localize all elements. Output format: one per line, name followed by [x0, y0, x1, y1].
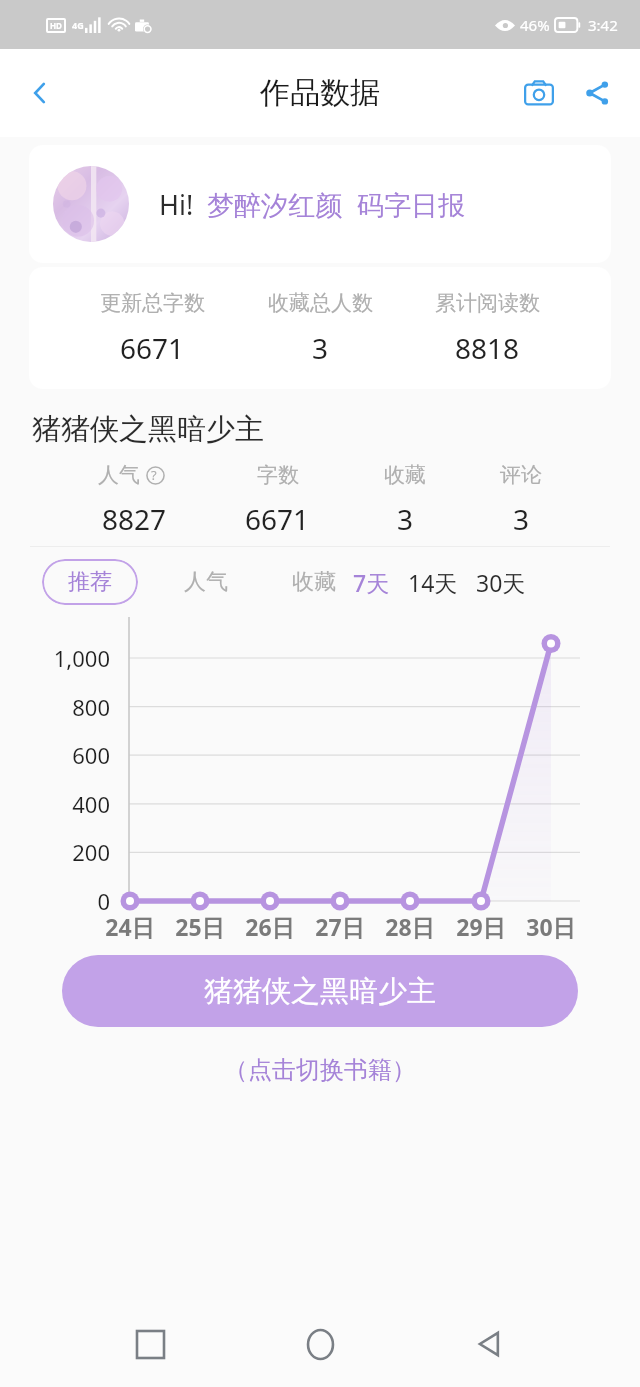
staticText: 收藏 — [292, 568, 336, 596]
staticText: 3 — [312, 329, 329, 367]
staticText: 0 — [0, 886, 110, 916]
staticText: 3:42 — [588, 15, 618, 35]
button[interactable]: 收藏 — [288, 564, 340, 600]
staticText: 30日 — [511, 911, 591, 942]
button[interactable]: 收藏总人数 — [268, 290, 373, 367]
button[interactable]: Back — [450, 1304, 530, 1384]
button[interactable]: 推荐 — [42, 559, 138, 605]
staticText: 25日 — [160, 911, 240, 942]
staticText: 3 — [513, 500, 530, 538]
staticText: 6671 — [245, 500, 310, 538]
staticText: 3 — [397, 500, 414, 538]
staticText: 46% — [520, 15, 550, 35]
staticText: 800 — [0, 692, 110, 722]
staticText: 推荐 — [68, 568, 112, 596]
staticText: 猪猪侠之黑暗少主 — [204, 973, 436, 1010]
staticText: 28日 — [370, 911, 450, 942]
button[interactable]: 人气 — [98, 462, 171, 538]
staticText: ? — [151, 466, 157, 484]
button[interactable]: Camera — [514, 68, 564, 118]
button[interactable]: 14天 — [405, 567, 461, 598]
staticText: 30天 — [476, 567, 526, 598]
staticText: 字数 — [257, 462, 299, 488]
staticText: 收藏总人数 — [268, 290, 373, 316]
staticText: 猪猪侠之黑暗少主 — [32, 411, 264, 448]
staticText: 1,000 — [0, 643, 110, 673]
button[interactable]: Recent apps — [110, 1304, 190, 1384]
button[interactable]: 7天 — [350, 567, 393, 598]
staticText: 作品数据 — [260, 74, 380, 112]
staticText: 24日 — [90, 911, 170, 942]
staticText: 26日 — [230, 911, 310, 942]
staticText: HD — [50, 20, 62, 31]
button[interactable]: 猪猪侠之黑暗少主 — [62, 955, 578, 1027]
staticText: 累计阅读数 — [435, 290, 540, 316]
staticText: 8818 — [455, 329, 520, 367]
button[interactable]: 30天 — [473, 567, 529, 598]
staticText: 27日 — [300, 911, 380, 942]
staticText: 8827 — [102, 500, 167, 538]
button[interactable]: 字数 — [245, 462, 310, 538]
staticText: 更新总字数 — [100, 290, 205, 316]
staticText: 600 — [0, 740, 110, 770]
staticText: 人气 — [98, 462, 140, 488]
staticText: 4G — [72, 19, 84, 31]
button[interactable]: Back — [14, 67, 66, 119]
staticText: 7天 — [353, 567, 390, 598]
button[interactable]: 累计阅读数 — [435, 290, 540, 367]
staticText: 29日 — [441, 911, 521, 942]
staticText: 梦醉汐红颜 — [207, 189, 342, 223]
staticText: 400 — [0, 789, 110, 819]
button[interactable]: （点击切换书籍） — [218, 1049, 422, 1091]
staticText: Hi! — [159, 186, 194, 223]
staticText: 码字日报 — [357, 189, 465, 223]
staticText: 200 — [0, 837, 110, 867]
button[interactable]: 更新总字数 — [100, 290, 205, 367]
staticText: （点击切换书籍） — [224, 1055, 416, 1085]
staticText: 6671 — [120, 329, 185, 367]
button[interactable]: 收藏 — [384, 462, 426, 538]
button[interactable]: Hi! — [29, 145, 611, 263]
button[interactable]: Share — [572, 68, 622, 118]
staticText: 人气 — [184, 568, 228, 596]
staticText: 14天 — [408, 567, 458, 598]
button[interactable]: 人气 — [180, 564, 232, 600]
staticText: 评论 — [500, 462, 542, 488]
button[interactable]: 评论 — [500, 462, 542, 538]
button[interactable]: Home — [280, 1304, 360, 1384]
staticText: 收藏 — [384, 462, 426, 488]
